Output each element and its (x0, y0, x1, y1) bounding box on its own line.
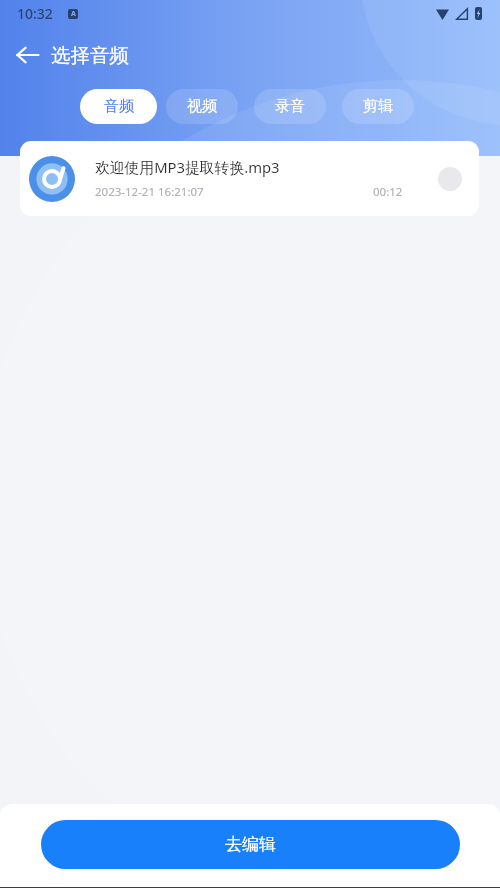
staticText: 音频 (104, 97, 134, 116)
staticText: 视频 (187, 97, 217, 116)
staticText: A (71, 9, 76, 19)
staticText: 选择音频 (51, 43, 129, 68)
button[interactable]: 去编辑 (41, 820, 460, 869)
button[interactable]: 视频 (166, 89, 238, 124)
button[interactable]: 剪辑 (342, 89, 414, 124)
staticText: 去编辑 (225, 834, 276, 855)
button[interactable]: 音频 (80, 89, 157, 124)
staticText: 剪辑 (363, 97, 393, 116)
staticText: 录音 (275, 97, 305, 116)
button[interactable]: Select item (438, 167, 462, 191)
button[interactable]: 欢迎使用MP3提取转换.mp3 (20, 141, 479, 216)
staticText: 欢迎使用MP3提取转换.mp3 (95, 157, 280, 177)
button[interactable]: Back (3, 40, 51, 70)
staticText: 00:12 (373, 184, 403, 200)
button[interactable]: 录音 (254, 89, 326, 124)
staticText: 10:32 (17, 4, 53, 23)
staticText: 2023-12-21 16:21:07 (95, 184, 204, 200)
